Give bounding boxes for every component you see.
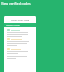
button[interactable] <box>4 48 36 54</box>
staticText: View verified codes <box>1 1 31 5</box>
staticText: Verify your code <box>11 18 30 21</box>
button[interactable] <box>4 38 36 46</box>
button[interactable] <box>4 29 36 37</box>
staticText: Verified codes <box>6 24 20 27</box>
button[interactable]: View verified codes <box>1 1 31 5</box>
button[interactable]: Verified codes <box>4 23 36 27</box>
